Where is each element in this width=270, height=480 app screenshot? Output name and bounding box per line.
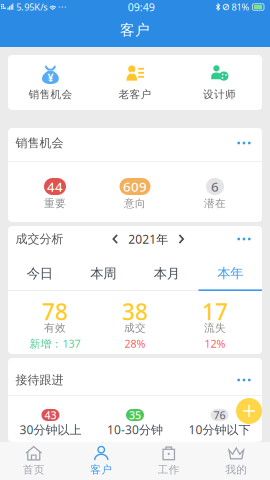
button[interactable]: 6 <box>175 162 255 216</box>
button[interactable]: 43 <box>8 396 93 442</box>
button[interactable]: 下一年 <box>173 232 189 246</box>
button[interactable]: 首页 <box>0 444 67 478</box>
button[interactable]: 设计师 <box>177 55 262 110</box>
staticText: ··· <box>58 1 67 13</box>
button[interactable]: 老客户 <box>93 55 177 110</box>
staticText: 76 <box>214 408 226 422</box>
button[interactable]: 本年 <box>198 257 262 291</box>
staticText: 30分钟以上 <box>19 421 81 437</box>
staticText: 我的 <box>225 463 247 476</box>
button[interactable]: 我的 <box>202 444 270 478</box>
staticText: 609 <box>123 178 147 195</box>
button[interactable]: 更多 <box>233 136 255 150</box>
staticText: 工作 <box>158 463 180 476</box>
staticText: 78 <box>42 296 68 326</box>
staticText: 5.95K/s <box>16 1 47 13</box>
staticText: 成交 <box>124 321 146 334</box>
staticText: 客户 <box>90 463 112 476</box>
staticText: 10分钟以下 <box>189 421 251 437</box>
button[interactable]: 本月 <box>135 257 198 291</box>
staticText: 潜在 <box>204 197 226 210</box>
staticText: 28% <box>124 336 145 351</box>
staticText: 43 <box>44 408 56 422</box>
staticText: 意向 <box>124 197 146 210</box>
staticText: ¥ <box>47 71 53 85</box>
staticText: 38 <box>122 296 148 326</box>
staticText: 流失 <box>204 321 226 334</box>
staticText: 6 <box>211 178 219 195</box>
button[interactable]: 35 <box>93 396 177 442</box>
staticText: 重要 <box>44 197 66 210</box>
staticText: 本周 <box>90 265 116 282</box>
staticText: 今日 <box>27 265 53 282</box>
button[interactable]: 609 <box>95 162 175 216</box>
staticText: 本月 <box>154 265 180 282</box>
button[interactable]: 工作 <box>135 444 202 478</box>
button[interactable]: 更多 <box>233 373 255 387</box>
button[interactable]: 新增 <box>236 398 262 424</box>
button[interactable]: 客户 <box>67 444 135 478</box>
staticText: 44 <box>47 178 63 195</box>
staticText: 35 <box>129 408 141 422</box>
staticText: 81% <box>231 1 249 13</box>
staticText: 有效 <box>44 321 66 334</box>
staticText: 新增：137 <box>29 336 80 351</box>
staticText: 老客户 <box>118 88 151 101</box>
staticText: 设计师 <box>203 88 236 101</box>
staticText: 2021年 <box>128 231 168 247</box>
staticText: 首页 <box>23 463 45 476</box>
staticText: 12% <box>204 336 225 351</box>
button[interactable]: 上一年 <box>107 232 123 246</box>
staticText: 接待跟进 <box>15 373 63 387</box>
staticText: 17 <box>202 296 228 326</box>
button[interactable]: 今日 <box>8 257 71 291</box>
staticText: 本年 <box>217 265 243 281</box>
button[interactable]: 本周 <box>71 257 135 291</box>
staticText: 10-30分钟 <box>107 421 163 437</box>
button[interactable]: ¥ <box>8 55 93 110</box>
staticText: 成交分析 <box>15 232 63 246</box>
button[interactable]: 44 <box>15 162 95 216</box>
staticText: 销售机会 <box>28 88 72 101</box>
button[interactable]: 更多 <box>233 232 255 246</box>
staticText: 09:49 <box>128 0 155 14</box>
button[interactable]: 76 <box>177 396 262 442</box>
staticText: 客户 <box>120 21 150 39</box>
staticText: 销售机会 <box>15 136 63 150</box>
